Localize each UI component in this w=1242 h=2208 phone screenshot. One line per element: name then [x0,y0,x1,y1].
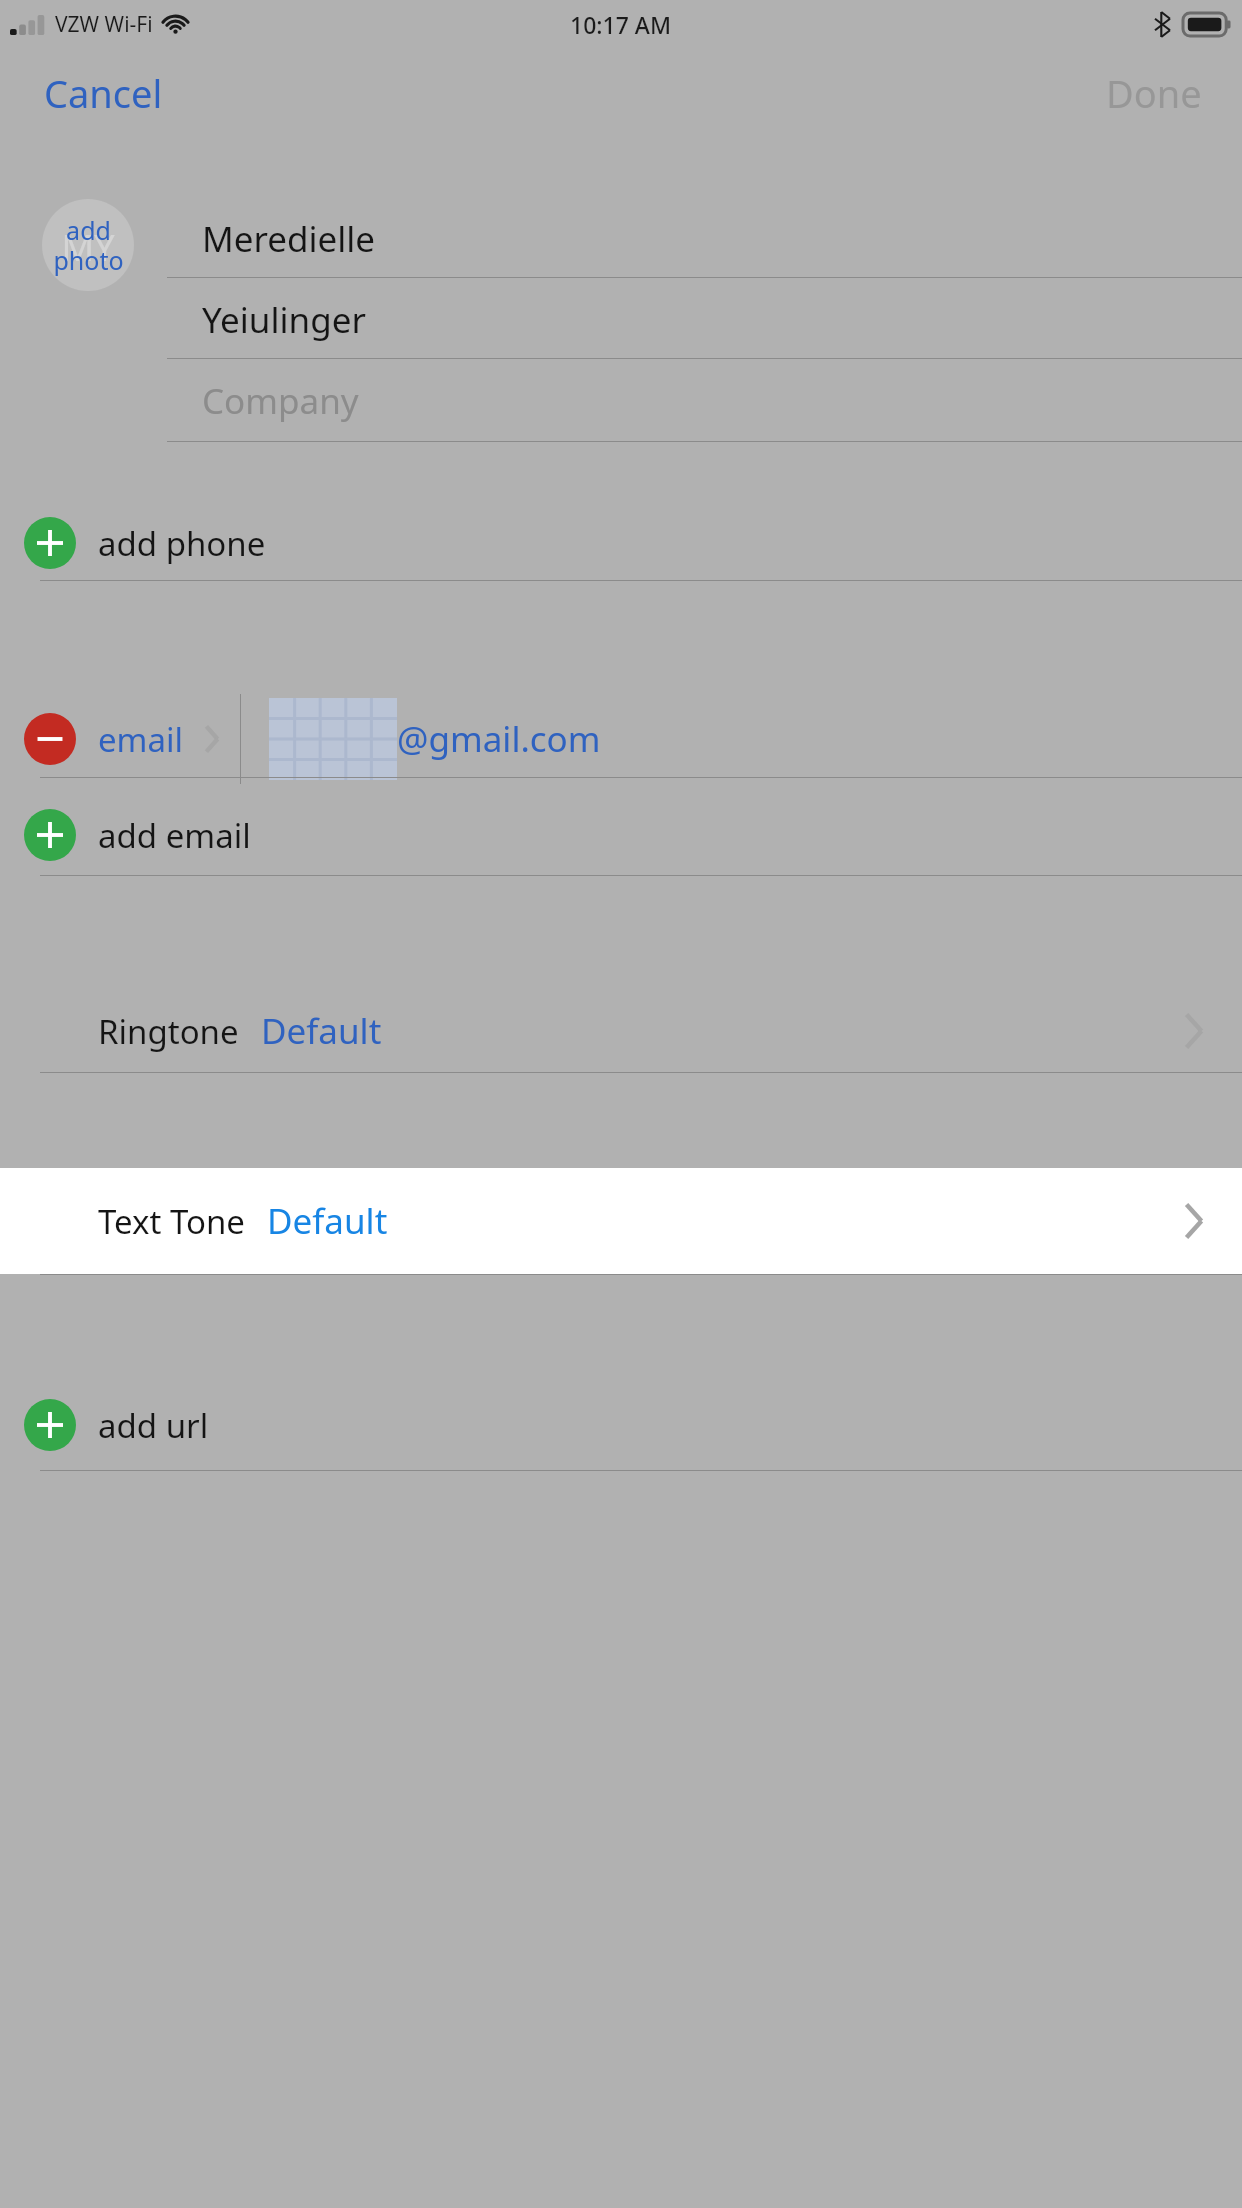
button[interactable]: Text Tone [0,1168,1242,1274]
staticText: add email [98,813,251,858]
staticText: Default [261,1007,382,1055]
button[interactable]: Done [1076,55,1242,127]
staticText: add phone [98,521,266,566]
staticText: Text Tone [98,1199,245,1244]
button[interactable]: add email [0,790,1242,880]
button[interactable]: Cancel [0,55,193,127]
other: Remove email [24,713,76,765]
button[interactable]: Remove email [0,694,1242,784]
staticText: Cancel [44,67,163,115]
button[interactable]: Company [167,362,1242,440]
button[interactable]: Yeiulinger [167,281,1242,359]
staticText: Company [202,377,359,425]
staticText: VZW Wi-Fi [55,10,153,39]
button[interactable]: Ringtone [0,985,1242,1077]
staticText: add photo [53,213,124,278]
staticText: email [98,717,184,762]
staticText: Meredielle [202,215,376,263]
button[interactable]: Meredielle [167,200,1242,278]
staticText: add url [98,1403,209,1448]
staticText: Default [267,1197,388,1245]
staticText: Ringtone [98,1009,239,1054]
staticText: Done [1106,67,1202,115]
staticText: Yeiulinger [202,296,366,344]
button[interactable]: add url [0,1380,1242,1470]
staticText: @gmail.com [397,715,601,763]
button[interactable]: Add photo [42,199,134,291]
staticText: MY [61,223,115,272]
button[interactable]: add phone [0,498,1242,588]
staticText: 10:17 AM [570,9,672,40]
